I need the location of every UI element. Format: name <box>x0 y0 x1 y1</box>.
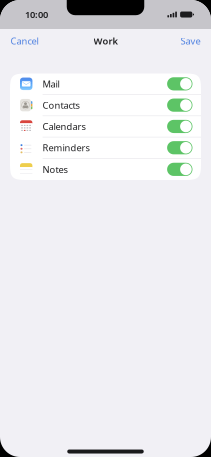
button[interactable]: Cancel <box>0 29 44 53</box>
staticText: Save <box>180 35 200 47</box>
staticText: Notes <box>43 163 68 176</box>
staticText: 10:00 <box>25 8 48 21</box>
staticText: Work <box>93 35 117 47</box>
button[interactable]: Calendars <box>10 116 201 137</box>
staticText: Calendars <box>43 120 86 133</box>
button[interactable]: Reminders <box>10 137 201 159</box>
button[interactable]: Notes <box>10 159 201 180</box>
staticText: Cancel <box>10 35 38 47</box>
button[interactable]: Mail <box>10 73 201 95</box>
button[interactable]: Contacts <box>10 95 201 116</box>
button[interactable]: Save <box>174 29 211 53</box>
staticText: Reminders <box>43 142 90 154</box>
staticText: Contacts <box>43 99 80 111</box>
staticText: Mail <box>43 78 60 90</box>
